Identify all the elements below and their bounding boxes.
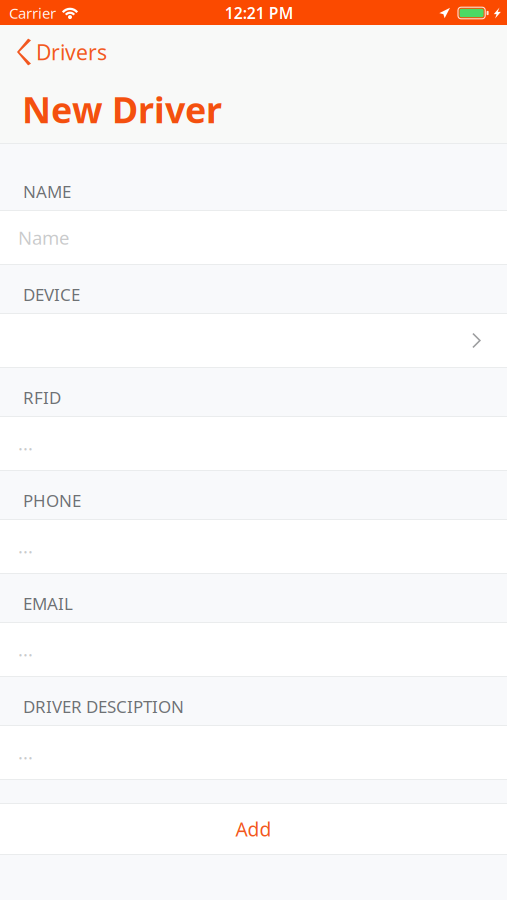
staticText: EMAIL	[23, 592, 73, 615]
staticText: Name	[18, 225, 69, 250]
staticText: ...	[18, 431, 33, 456]
staticText: New Driver	[22, 85, 222, 134]
staticText: Add	[235, 816, 271, 842]
staticText: NAME	[23, 180, 71, 203]
button[interactable]: ...	[0, 725, 507, 780]
button[interactable]: Drivers	[0, 24, 119, 79]
button[interactable]: ...	[0, 622, 507, 677]
button[interactable]: Select device	[0, 313, 507, 368]
staticText: RFID	[23, 386, 61, 409]
button[interactable]: Add	[0, 803, 507, 855]
button[interactable]: Name	[0, 210, 507, 265]
staticText: ...	[18, 534, 33, 559]
staticText: DRIVER DESCIPTION	[23, 695, 184, 718]
staticText: PHONE	[23, 489, 81, 512]
staticText: Drivers	[36, 38, 107, 66]
button[interactable]: ...	[0, 519, 507, 574]
staticText: Carrier	[9, 3, 56, 23]
staticText: 12:21 PM	[225, 2, 294, 24]
button[interactable]: ...	[0, 416, 507, 471]
staticText: ...	[18, 740, 33, 765]
staticText: DEVICE	[23, 283, 80, 306]
staticText: ...	[18, 637, 33, 662]
